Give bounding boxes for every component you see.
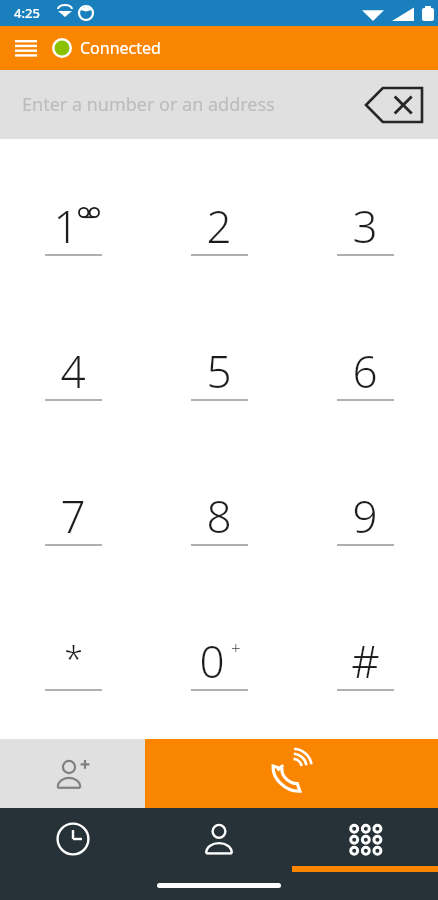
button[interactable]: 3 <box>292 153 438 298</box>
button[interactable]: Contacts <box>146 808 292 870</box>
button[interactable]: Keypad <box>292 808 438 870</box>
button[interactable]: Recents <box>0 808 146 870</box>
staticText: 4:25 <box>14 4 40 22</box>
staticText: 6 <box>352 341 378 397</box>
staticText: # <box>351 631 380 687</box>
staticText: 9 <box>352 486 378 542</box>
button[interactable]: 6 <box>292 298 438 443</box>
staticText: 4 <box>60 341 86 397</box>
button[interactable]: 1 <box>0 153 146 298</box>
staticText: 3 <box>352 196 378 252</box>
staticText: 2 <box>206 196 232 252</box>
button[interactable]: Enter a number or an address <box>0 70 438 139</box>
staticText: + <box>231 636 241 659</box>
staticText: 5 <box>206 341 232 397</box>
staticText: * <box>64 636 83 682</box>
button[interactable]: 4 <box>0 298 146 443</box>
button[interactable]: 0 <box>146 588 292 733</box>
staticText: 1 <box>53 196 79 252</box>
button[interactable]: 9 <box>292 443 438 588</box>
button[interactable]: 7 <box>0 443 146 588</box>
button[interactable]: # <box>292 588 438 733</box>
button[interactable]: 2 <box>146 153 292 298</box>
button[interactable]: 5 <box>146 298 292 443</box>
staticText: Connected <box>80 37 161 59</box>
button[interactable]: Add contact <box>0 739 145 808</box>
button[interactable]: Backspace <box>362 82 426 128</box>
button[interactable]: * <box>0 588 146 733</box>
staticText: 7 <box>60 486 86 542</box>
button[interactable]: Call <box>145 739 438 808</box>
staticText: 8 <box>206 486 232 542</box>
button[interactable]: Menu <box>8 30 44 66</box>
button[interactable]: 8 <box>146 443 292 588</box>
staticText: Enter a number or an address <box>22 92 275 117</box>
staticText: 0 <box>199 631 225 687</box>
